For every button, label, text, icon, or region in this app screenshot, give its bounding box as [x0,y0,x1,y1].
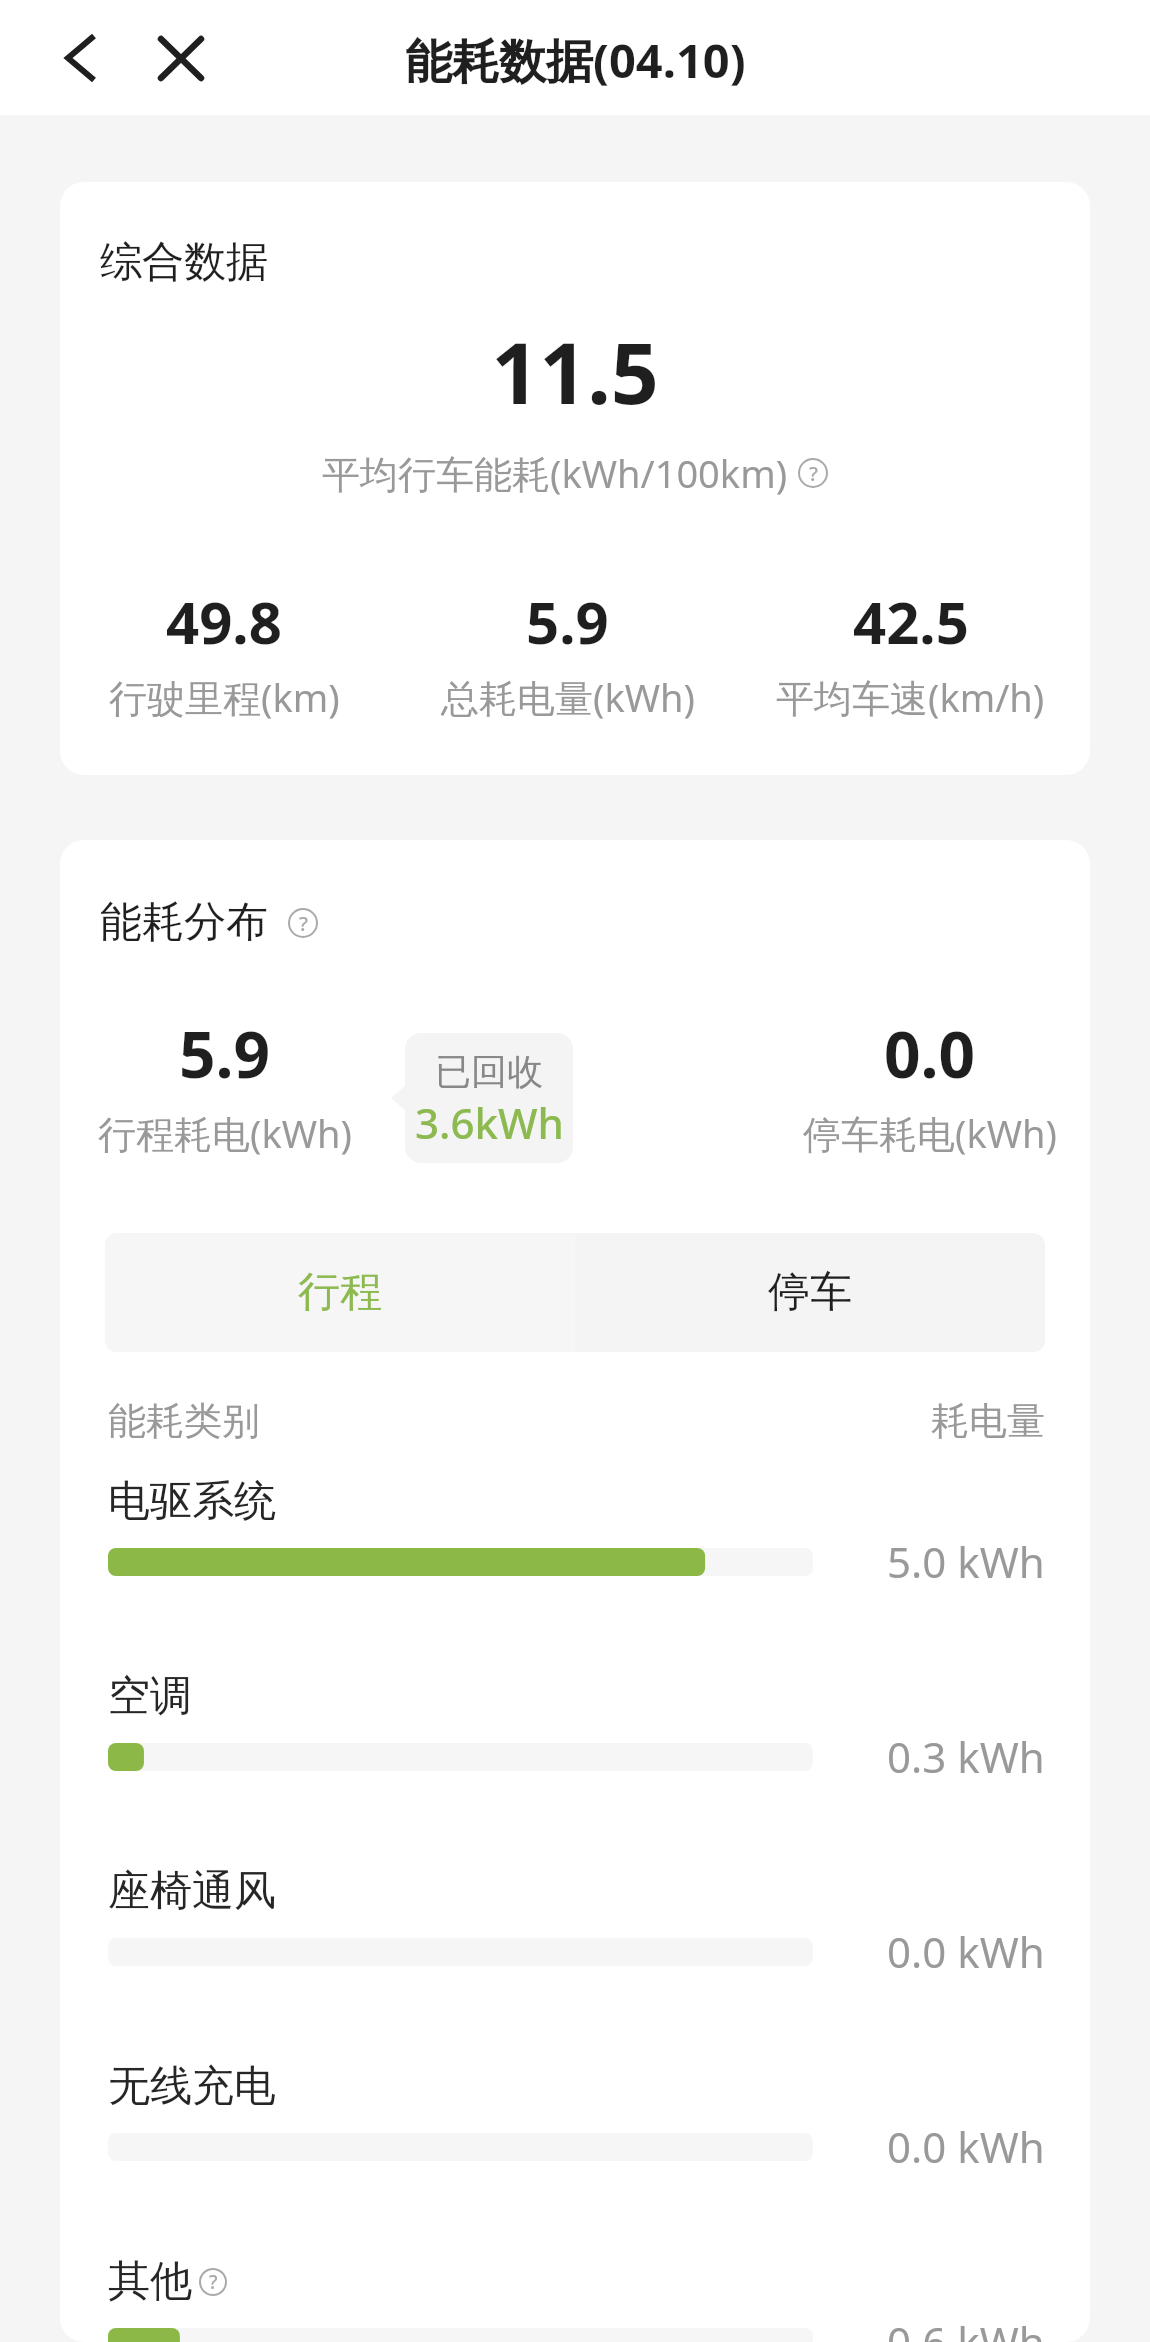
staticText: 5.9 [179,1010,271,1097]
staticText: 能耗数据(04.10) [405,28,746,92]
staticText: 行程耗电(kWh) [98,1107,352,1159]
staticText: 3.6kWh [415,1094,564,1151]
staticText: 空调 [108,1670,192,1723]
staticText: 综合数据 [100,236,268,289]
staticText: 无线充电 [108,2060,276,2113]
staticText: 平均车速(km/h) [776,671,1045,723]
staticText: 停车耗电(kWh) [803,1107,1057,1159]
staticText: 电驱系统 [108,1475,276,1528]
staticText: 5.9 [526,582,609,661]
staticText: 49.8 [166,582,282,661]
staticText: 行驶里程(km) [109,671,340,723]
staticText: 耗电量 [931,1397,1045,1445]
staticText: ? [209,2269,218,2295]
staticText: 能耗类别 [108,1397,260,1445]
staticText: 11.5 [60,314,1090,428]
staticText: 停车 [768,1266,852,1319]
staticText: 0.0 kWh [887,2118,1045,2175]
staticText: ? [299,910,308,937]
staticText: 0.0 kWh [887,1923,1045,1980]
staticText: 已回收 [435,1049,543,1094]
staticText: 平均行车能耗(kWh/100km) [322,447,788,499]
staticText: 行程 [298,1266,382,1319]
staticText: 座椅通风 [108,1865,276,1918]
staticText: 42.5 [853,582,969,661]
staticText: 0.3 kWh [887,1728,1045,1785]
staticText: 0.0 [884,1010,976,1097]
staticText: 0.6 kWh [887,2313,1045,2342]
staticText: 总耗电量(kWh) [441,671,695,723]
staticText: 能耗分布 [100,896,268,949]
staticText: 5.0 kWh [887,1533,1045,1590]
staticText: ? [809,460,818,487]
staticText: 其他 [108,2255,192,2308]
